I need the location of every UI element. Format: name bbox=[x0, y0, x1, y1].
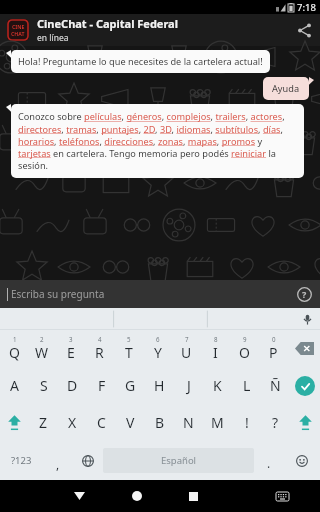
staticText: P bbox=[269, 343, 278, 362]
staticText: V bbox=[126, 413, 135, 432]
button[interactable]: Ayuda bbox=[263, 77, 309, 100]
staticText: Z bbox=[39, 413, 48, 432]
staticText: O bbox=[239, 343, 250, 362]
button[interactable]: L bbox=[232, 367, 261, 404]
button[interactable]: F bbox=[87, 367, 116, 404]
button[interactable]: 1 bbox=[0, 330, 28, 367]
staticText: Q bbox=[9, 343, 20, 362]
button[interactable]: Hola! Preguntame lo que necesites de la … bbox=[11, 50, 270, 73]
button[interactable]: 4 bbox=[85, 330, 114, 367]
staticText: en línea bbox=[37, 32, 69, 44]
staticText: U bbox=[181, 343, 192, 362]
staticText: CINE bbox=[12, 23, 25, 30]
staticText: B bbox=[155, 413, 165, 432]
button[interactable]: ?123 bbox=[0, 441, 43, 480]
staticText: R bbox=[95, 343, 104, 362]
button[interactable]: S bbox=[29, 367, 58, 404]
button[interactable]: Emoji bbox=[284, 441, 320, 480]
staticText: G bbox=[125, 376, 136, 395]
staticText: 6 bbox=[156, 335, 160, 343]
button[interactable]: ? bbox=[261, 404, 290, 441]
staticText: Ayuda bbox=[272, 82, 300, 95]
button[interactable]: 0 bbox=[259, 330, 288, 367]
staticText: CineChat - Capital Federal bbox=[37, 16, 178, 31]
button[interactable]: M bbox=[203, 404, 232, 441]
button[interactable]: Atrás bbox=[61, 480, 98, 512]
staticText: K bbox=[213, 376, 222, 395]
button[interactable]: Ñ bbox=[261, 367, 290, 404]
button[interactable]: Escriba su pregunta bbox=[0, 280, 320, 308]
button[interactable]: Borrar bbox=[288, 330, 320, 367]
button[interactable]: Z bbox=[29, 404, 58, 441]
button[interactable]: Teclado bbox=[264, 480, 301, 512]
button[interactable]: G bbox=[116, 367, 145, 404]
staticText: S bbox=[40, 376, 48, 395]
button[interactable]: ! bbox=[232, 404, 261, 441]
staticText: 2 bbox=[40, 335, 44, 343]
staticText: E bbox=[67, 343, 75, 362]
staticText: 9 bbox=[243, 335, 247, 343]
staticText: D bbox=[67, 376, 78, 395]
button[interactable]: Idioma bbox=[73, 441, 103, 480]
staticText: C bbox=[97, 413, 106, 432]
button[interactable]: Mayúsculas bbox=[290, 404, 320, 441]
button[interactable]: 5 bbox=[114, 330, 143, 367]
button[interactable]: K bbox=[203, 367, 232, 404]
button[interactable]: V bbox=[116, 404, 145, 441]
button[interactable]: Enviar bbox=[290, 367, 320, 404]
staticText: W bbox=[35, 343, 49, 362]
button[interactable]: C bbox=[87, 404, 116, 441]
button[interactable]: Mayúsculas bbox=[0, 404, 29, 441]
staticText: Ñ bbox=[270, 376, 281, 395]
button[interactable]: D bbox=[58, 367, 87, 404]
button[interactable]: Conozco sobre películas, géneros, comple… bbox=[11, 104, 304, 178]
staticText: T bbox=[125, 343, 133, 362]
button[interactable]: . bbox=[254, 441, 284, 480]
staticText: 0 bbox=[272, 335, 276, 343]
button[interactable]: 2 bbox=[28, 330, 56, 367]
button[interactable]: 6 bbox=[143, 330, 172, 367]
staticText: ?123 bbox=[11, 454, 32, 467]
staticText: 5 bbox=[127, 335, 131, 343]
button[interactable]: Español bbox=[103, 448, 254, 473]
button[interactable]: B bbox=[145, 404, 174, 441]
button[interactable]: Voz bbox=[294, 308, 320, 330]
staticText: A bbox=[10, 376, 19, 395]
staticText: 8 bbox=[214, 335, 218, 343]
button[interactable]: Inicio bbox=[118, 480, 155, 512]
button[interactable]: 3 bbox=[56, 330, 85, 367]
button[interactable]: 7 bbox=[172, 330, 201, 367]
button[interactable]: 9 bbox=[230, 330, 259, 367]
button[interactable]: , bbox=[43, 441, 73, 480]
button[interactable]: A bbox=[0, 367, 29, 404]
staticText: , bbox=[56, 456, 60, 472]
button[interactable]: J bbox=[174, 367, 203, 404]
button[interactable]: N bbox=[174, 404, 203, 441]
staticText: . bbox=[267, 455, 271, 471]
staticText: 7 bbox=[185, 335, 189, 343]
staticText: X bbox=[68, 413, 77, 432]
button[interactable]: X bbox=[58, 404, 87, 441]
button[interactable]: Compartir bbox=[288, 14, 320, 46]
staticText: 1 bbox=[13, 335, 17, 343]
staticText: L bbox=[243, 376, 251, 395]
button[interactable]: Recientes bbox=[175, 480, 212, 512]
staticText: M bbox=[211, 413, 224, 432]
staticText: I bbox=[213, 343, 218, 362]
staticText: J bbox=[187, 376, 191, 395]
staticText: F bbox=[98, 376, 106, 395]
staticText: 7:18 bbox=[297, 1, 316, 14]
staticText: 4 bbox=[98, 335, 102, 343]
staticText: Conozco sobre películas, géneros, comple… bbox=[18, 110, 297, 172]
staticText: Escriba su pregunta bbox=[11, 287, 105, 301]
staticText: ? bbox=[272, 413, 279, 432]
staticText: CHAT bbox=[11, 30, 25, 37]
staticText: Hola! Preguntame lo que necesites de la … bbox=[18, 55, 263, 68]
staticText: N bbox=[183, 413, 194, 432]
staticText: 3 bbox=[69, 335, 73, 343]
staticText: ! bbox=[245, 413, 249, 432]
button[interactable]: 8 bbox=[201, 330, 230, 367]
staticText: ? bbox=[302, 288, 307, 300]
button[interactable]: Ayuda bbox=[291, 281, 317, 307]
button[interactable]: H bbox=[145, 367, 174, 404]
